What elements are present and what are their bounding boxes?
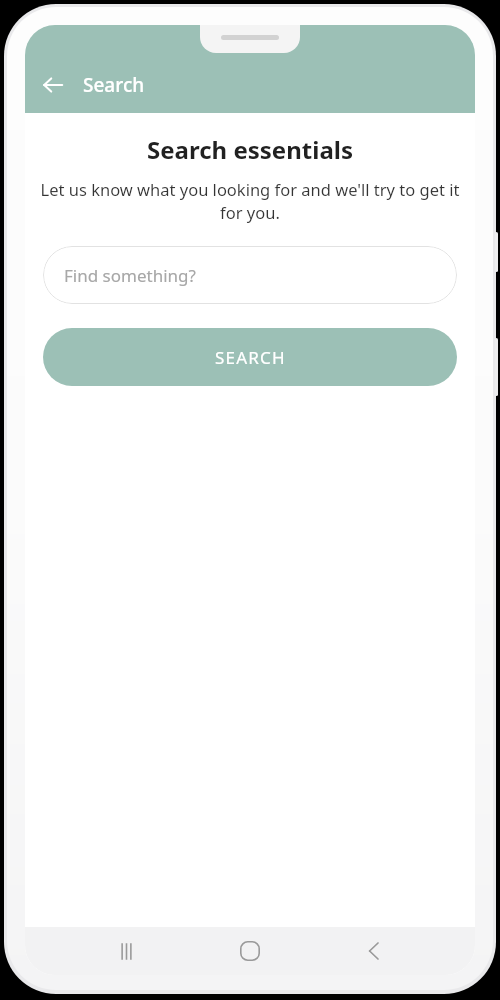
button[interactable]: Back — [351, 928, 397, 974]
staticText: Search essentials — [147, 133, 353, 166]
staticText: Search — [83, 72, 145, 98]
staticText: SEARCH — [215, 346, 286, 369]
button[interactable]: Find something? — [43, 246, 457, 304]
staticText: Let us know what you looking for and we'… — [39, 178, 461, 224]
button[interactable]: Home — [227, 928, 273, 974]
staticText: Find something? — [64, 264, 196, 287]
button[interactable]: Recent apps — [103, 928, 149, 974]
button[interactable]: SEARCH — [43, 328, 457, 386]
button[interactable]: Back — [33, 65, 73, 105]
